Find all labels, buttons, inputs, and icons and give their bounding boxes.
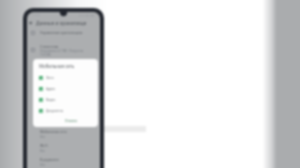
- staticText: Управление хранилищем: [40, 30, 83, 35]
- button[interactable]: В роуминге: [27, 156, 100, 168]
- button[interactable]: Документы: [33, 105, 98, 116]
- staticText: Статистика: [40, 44, 59, 49]
- staticText: Отправлено 4.7 МБ · Получено 19.5 МБ: [40, 49, 89, 56]
- button[interactable]: Управление хранилищем: [27, 28, 100, 37]
- button[interactable]: Отмена: [63, 118, 80, 124]
- staticText: В роуминге: [40, 157, 59, 162]
- staticText: Аудио: [46, 87, 55, 91]
- staticText: 10:24: [32, 13, 41, 17]
- staticText: Wi-Fi: [40, 143, 48, 148]
- staticText: Документы: [46, 109, 64, 113]
- button[interactable]: Статистика: [27, 44, 100, 56]
- staticText: Видео: [46, 98, 56, 102]
- staticText: Фото: [46, 76, 54, 80]
- staticText: Отмена: [65, 119, 78, 123]
- button[interactable]: Видео: [33, 94, 98, 105]
- staticText: Данные и хранилище: [36, 20, 87, 26]
- button[interactable]: Wi-Fi: [27, 142, 100, 156]
- button[interactable]: Фото: [33, 72, 98, 83]
- button[interactable]: Аудио: [33, 83, 98, 94]
- staticText: Мобильная сеть: [40, 129, 67, 134]
- button[interactable]: Back: [27, 19, 35, 27]
- button[interactable]: Мобильная сеть: [27, 128, 100, 142]
- staticText: Мобильная сеть: [39, 63, 75, 69]
